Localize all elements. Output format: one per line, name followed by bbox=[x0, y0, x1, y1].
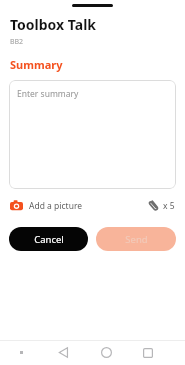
button[interactable]: Back bbox=[42, 340, 85, 365]
other: Attachments bbox=[147, 199, 160, 212]
button[interactable]: Send bbox=[96, 227, 176, 251]
button[interactable]: Add a picture bbox=[10, 199, 83, 212]
button[interactable]: Enter summary bbox=[9, 80, 176, 189]
staticText: Toolbox Talk bbox=[10, 15, 97, 34]
button[interactable]: Attachments bbox=[147, 199, 175, 212]
staticText: BB2 bbox=[10, 37, 24, 47]
button[interactable]: Home bbox=[85, 340, 127, 365]
staticText: x 5 bbox=[163, 200, 175, 212]
button[interactable]: Recent apps bbox=[127, 340, 169, 365]
staticText: Enter summary bbox=[17, 88, 79, 100]
other: Add a picture bbox=[10, 199, 23, 212]
staticText: Send bbox=[125, 233, 148, 246]
button[interactable]: Cancel bbox=[9, 227, 88, 251]
staticText: Summary bbox=[10, 57, 63, 72]
staticText: Add a picture bbox=[29, 200, 83, 212]
staticText: Cancel bbox=[34, 233, 64, 246]
